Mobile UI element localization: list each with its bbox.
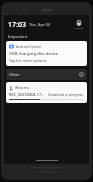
button[interactable]: Webview <box>6 82 87 103</box>
staticText: REC_20230404-170307.mp4 <box>9 92 46 97</box>
staticText: Important <box>8 34 28 39</box>
button[interactable]: Android System <box>6 41 87 66</box>
button[interactable]: Battery and settings <box>73 19 85 30</box>
staticText: 17:03 <box>8 20 26 30</box>
staticText: Download in progress. <box>48 92 84 97</box>
staticText: Webview <box>15 85 30 90</box>
button[interactable]: Important <box>4 33 89 41</box>
staticText: Settings <box>74 26 84 29</box>
button[interactable]: Other <box>6 69 87 80</box>
staticText: Android System <box>16 44 42 49</box>
staticText: Other <box>9 72 20 77</box>
staticText: Tap for more options. <box>9 58 48 63</box>
button[interactable]: Home <box>36 160 58 161</box>
staticText: USB charging this device <box>9 51 59 57</box>
button[interactable]: Notification settings <box>79 72 84 77</box>
staticText: Tue, Apr 04 <box>29 22 51 27</box>
